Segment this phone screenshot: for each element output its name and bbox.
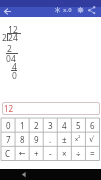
staticText: 0 bbox=[6, 53, 11, 64]
staticText: 0 bbox=[12, 70, 17, 81]
staticText: 4 bbox=[11, 53, 16, 64]
button[interactable]: 12 bbox=[2, 102, 100, 115]
staticText: 0 bbox=[6, 120, 11, 131]
button[interactable] bbox=[87, 5, 97, 15]
button[interactable]: x² bbox=[71, 132, 85, 146]
staticText: = bbox=[90, 148, 95, 159]
staticText: 2 bbox=[2, 32, 7, 43]
staticText: 7 bbox=[6, 134, 11, 145]
staticText: 1 bbox=[20, 120, 25, 131]
button[interactable]: = bbox=[85, 146, 99, 160]
button[interactable]: ← bbox=[15, 146, 29, 160]
staticText: 4 bbox=[12, 61, 17, 72]
button[interactable]: 5 bbox=[71, 118, 85, 132]
button[interactable]: 3 bbox=[43, 118, 57, 132]
button[interactable]: 4 bbox=[57, 118, 71, 132]
staticText: 2 bbox=[7, 43, 12, 54]
button[interactable]: + bbox=[29, 146, 43, 160]
staticText: C bbox=[5, 148, 11, 159]
staticText: 12 bbox=[4, 103, 14, 114]
button[interactable] bbox=[2, 6, 12, 16]
button[interactable]: 6 bbox=[85, 118, 99, 132]
staticText: 5 bbox=[76, 120, 81, 131]
staticText: x.0 bbox=[63, 6, 72, 14]
button[interactable] bbox=[76, 5, 85, 15]
button[interactable]: ÷ bbox=[71, 146, 85, 160]
button[interactable]: 2 bbox=[29, 118, 43, 132]
staticText: 8 bbox=[20, 134, 25, 145]
staticText: 4 bbox=[62, 120, 67, 131]
button[interactable]: 8 bbox=[15, 132, 29, 146]
staticText: 1 bbox=[8, 24, 13, 35]
button[interactable]: 7 bbox=[1, 132, 15, 146]
button[interactable]: 0 bbox=[1, 118, 15, 132]
staticText: 4 bbox=[13, 32, 18, 43]
button[interactable]: × bbox=[57, 146, 71, 160]
staticText: 6 bbox=[90, 120, 95, 131]
staticText: 2 bbox=[13, 24, 18, 35]
staticText: ± bbox=[62, 134, 67, 145]
staticText: - bbox=[49, 148, 52, 159]
button[interactable]: √ bbox=[85, 132, 99, 146]
staticText: . bbox=[49, 134, 52, 145]
button[interactable]: 1 bbox=[15, 118, 29, 132]
staticText: 2 bbox=[8, 32, 13, 43]
button[interactable] bbox=[53, 5, 62, 15]
staticText: ÷ bbox=[76, 148, 81, 159]
staticText: x² bbox=[75, 135, 81, 143]
button[interactable]: - bbox=[43, 146, 57, 160]
staticText: × bbox=[62, 148, 67, 159]
button[interactable]: . bbox=[43, 132, 57, 146]
button[interactable]: C bbox=[1, 146, 15, 160]
staticText: 9 bbox=[34, 134, 39, 145]
staticText: ← bbox=[19, 149, 26, 158]
button[interactable]: 9 bbox=[29, 132, 43, 146]
button[interactable] bbox=[18, 169, 30, 180]
staticText: 2 bbox=[34, 120, 39, 131]
button[interactable]: x.0 bbox=[62, 5, 73, 15]
staticText: 3 bbox=[48, 120, 53, 131]
button[interactable]: ± bbox=[57, 132, 71, 146]
staticText: √ bbox=[89, 135, 95, 144]
staticText: + bbox=[34, 148, 39, 159]
